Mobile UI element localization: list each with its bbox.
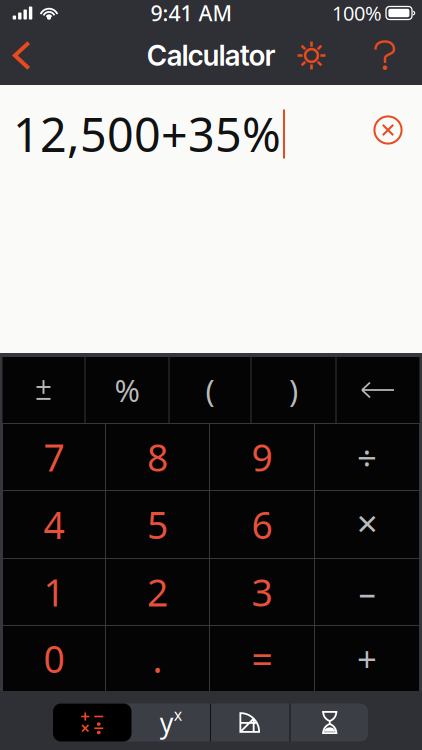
button[interactable]: 0 — [3, 626, 105, 691]
staticText: 9 — [251, 432, 272, 482]
staticText: 1 — [43, 567, 64, 617]
button[interactable]: y — [131, 703, 210, 741]
staticText: 6 — [251, 500, 272, 549]
staticText: 0 — [43, 634, 64, 683]
button[interactable]: – — [315, 559, 419, 625]
staticText: Calculator — [147, 39, 275, 72]
button[interactable]: + — [315, 626, 419, 691]
staticText: + — [357, 635, 377, 681]
button[interactable]: Backspace — [336, 357, 419, 423]
button[interactable]: Clear — [364, 106, 412, 154]
button[interactable]: ÷ — [315, 424, 419, 490]
button[interactable]: 4 — [3, 491, 105, 558]
staticText: 7 — [43, 432, 64, 482]
staticText: 3 — [251, 567, 272, 617]
button[interactable]: 1 — [3, 559, 105, 625]
staticText: – — [358, 569, 375, 615]
button[interactable]: 6 — [210, 491, 314, 558]
staticText: 9:41 AM — [150, 0, 232, 27]
button[interactable]: Help — [359, 26, 411, 85]
staticText: 5 — [147, 500, 168, 549]
staticText: ( — [205, 370, 214, 410]
button[interactable]: 2 — [106, 559, 209, 625]
button[interactable]: % — [85, 357, 168, 423]
button[interactable]: Back — [0, 26, 44, 85]
staticText: % — [114, 370, 139, 410]
staticText: 4 — [43, 500, 64, 549]
staticText: ) — [289, 370, 298, 410]
button[interactable] — [53, 703, 131, 741]
button[interactable]: 3 — [210, 559, 314, 625]
button[interactable]: ✕ — [315, 491, 419, 558]
staticText: ÷ — [357, 434, 377, 480]
button[interactable]: 9 — [210, 424, 314, 490]
button[interactable] — [211, 703, 289, 741]
staticText: 2 — [147, 567, 168, 617]
button[interactable]: Brightness — [264, 26, 359, 85]
staticText: ✕ — [355, 509, 378, 540]
staticText: y — [160, 705, 174, 740]
button[interactable]: . — [106, 626, 209, 691]
staticText: . — [152, 634, 162, 683]
button[interactable]: ) — [251, 357, 335, 423]
button[interactable]: 7 — [3, 424, 105, 490]
staticText: 12,500+35% — [13, 103, 281, 165]
button[interactable] — [290, 703, 369, 741]
button[interactable]: = — [210, 626, 314, 691]
button[interactable]: 5 — [106, 491, 209, 558]
button[interactable]: ( — [169, 357, 250, 423]
button[interactable]: 8 — [106, 424, 209, 490]
staticText: 8 — [147, 432, 168, 482]
staticText: x — [174, 704, 182, 725]
staticText: = — [251, 634, 272, 683]
staticText: 100% — [332, 0, 382, 26]
button[interactable]: Plus or minus — [2, 357, 84, 423]
